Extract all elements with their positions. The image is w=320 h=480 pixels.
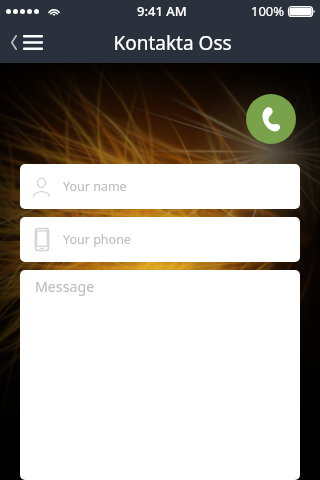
- button[interactable]: Menu: [0, 27, 51, 58]
- button[interactable]: Message: [20, 270, 300, 480]
- staticText: Your name: [63, 178, 127, 195]
- staticText: Message: [35, 277, 95, 296]
- staticText: Kontakta Oss: [113, 30, 232, 56]
- button[interactable]: Call: [246, 94, 296, 144]
- staticText: 9:41 AM: [137, 2, 187, 20]
- button[interactable]: Your name: [20, 164, 300, 209]
- staticText: 100%: [251, 2, 285, 20]
- button[interactable]: Your phone: [20, 217, 300, 262]
- staticText: Your phone: [63, 231, 131, 248]
